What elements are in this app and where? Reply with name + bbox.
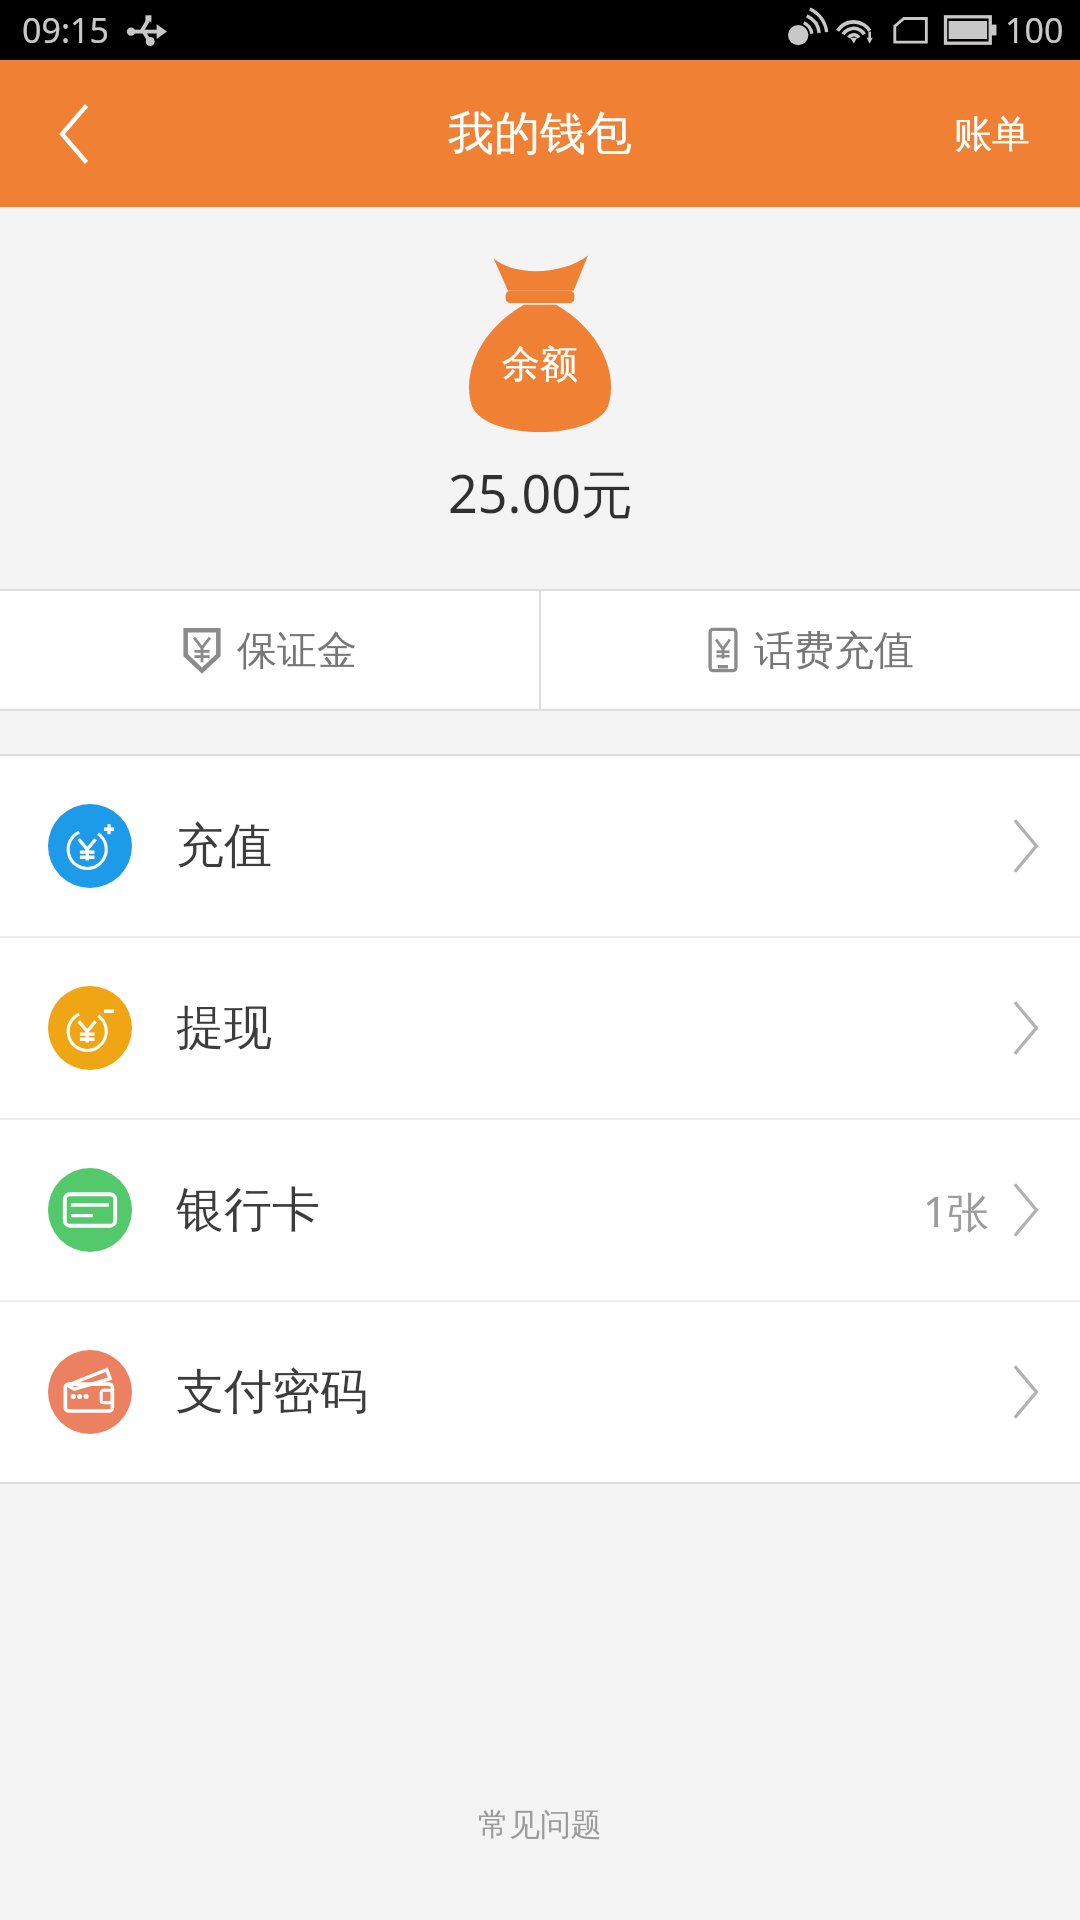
button[interactable]: 话费充值 bbox=[541, 591, 1080, 709]
staticText: 25.00元 bbox=[448, 457, 633, 528]
staticText: 保证金 bbox=[237, 625, 357, 675]
button[interactable]: 充值 bbox=[0, 756, 1080, 936]
staticText: 提现 bbox=[176, 998, 272, 1058]
staticText: 银行卡 bbox=[176, 1180, 320, 1240]
staticText: 余额 bbox=[502, 340, 578, 388]
button[interactable]: 银行卡 bbox=[0, 1120, 1080, 1300]
button[interactable]: 账单 bbox=[904, 60, 1080, 207]
staticText: 充值 bbox=[176, 816, 272, 876]
staticText: 账单 bbox=[954, 110, 1030, 158]
staticText: 支付密码 bbox=[176, 1362, 368, 1422]
staticText: 1张 bbox=[923, 1182, 990, 1239]
staticText: 09:15 bbox=[22, 7, 109, 53]
button[interactable]: 保证金 bbox=[0, 591, 539, 709]
staticText: 常见问题 bbox=[478, 1805, 602, 1844]
button[interactable]: 提现 bbox=[0, 938, 1080, 1118]
button[interactable]: 常见问题 bbox=[454, 1795, 626, 1854]
staticText: 话费充值 bbox=[754, 625, 914, 675]
button[interactable]: 支付密码 bbox=[0, 1302, 1080, 1482]
staticText: 100 bbox=[1005, 7, 1064, 53]
button[interactable]: Back bbox=[0, 60, 150, 207]
staticText: 我的钱包 bbox=[448, 105, 632, 163]
